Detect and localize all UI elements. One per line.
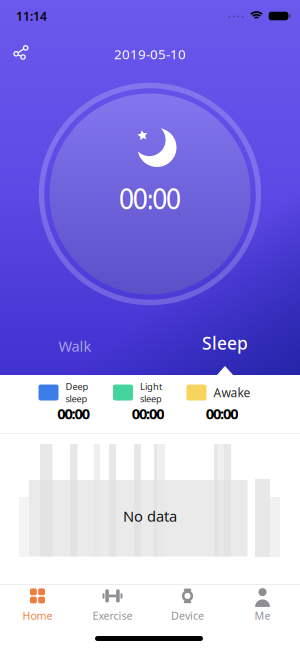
staticText: Light [140,380,162,392]
staticText: sleep [140,392,162,405]
button[interactable]: Walk [20,329,130,363]
staticText: 00:00 [57,403,90,423]
button[interactable]: Exercise [75,582,149,628]
staticText: Awake [213,384,250,400]
staticText: sleep [65,392,87,405]
staticText: 2019-05-10 [114,45,186,63]
staticText: 00:00 [132,403,164,423]
staticText: Home [22,608,52,623]
staticText: 00:00 [118,183,182,216]
staticText: Exercise [92,608,132,623]
staticText: No data [123,506,177,526]
button[interactable]: Me [225,582,299,628]
button[interactable]: Sleep [170,326,280,360]
staticText: Walk [58,336,91,356]
staticText: Sleep [202,331,248,354]
staticText: 00:00 [206,403,238,423]
staticText: Me [254,608,270,623]
staticText: 11:14 [16,8,47,24]
button[interactable]: Share [4,34,37,68]
button[interactable]: Device [150,582,224,628]
staticText: Device [171,608,204,623]
staticText: Deep [65,380,88,392]
button[interactable]: Home [0,582,74,628]
